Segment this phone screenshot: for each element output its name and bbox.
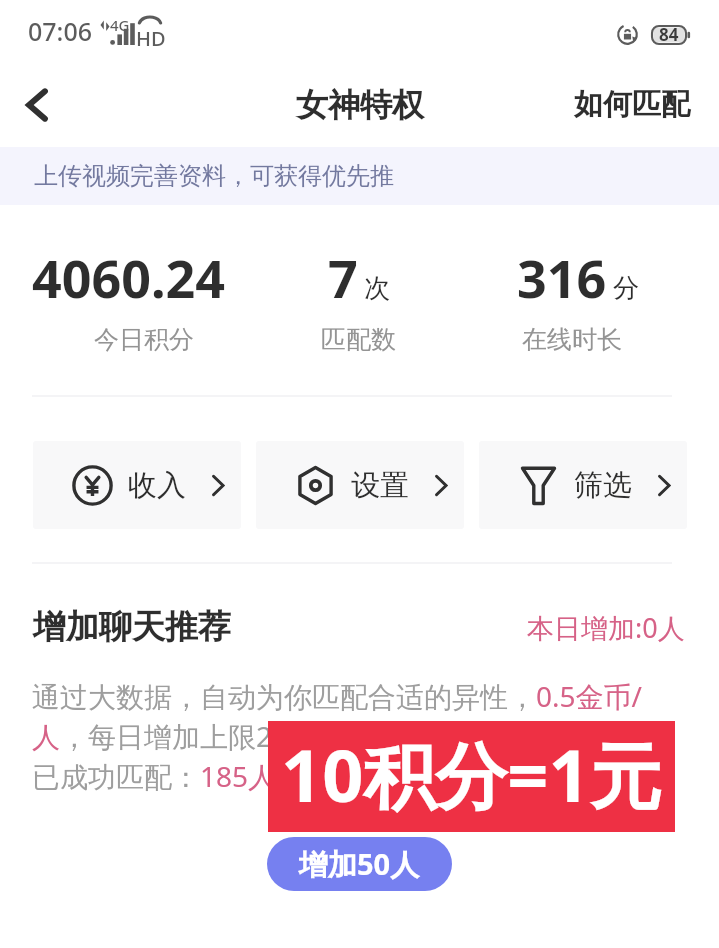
staticText: 316 xyxy=(517,242,607,313)
staticText: 7 xyxy=(328,242,358,313)
button[interactable]: 收入 xyxy=(33,441,241,529)
button[interactable]: 如何匹配 xyxy=(554,74,719,135)
staticText: 次 xyxy=(364,272,390,305)
staticText: 分 xyxy=(613,272,639,305)
staticText: 本日增加:0人 xyxy=(527,609,685,646)
staticText: 07:06 xyxy=(28,14,93,48)
staticText: 设置 xyxy=(351,467,409,504)
button[interactable]: Back xyxy=(8,76,66,134)
staticText: 匹配数 xyxy=(321,324,396,355)
staticText: 筛选 xyxy=(574,467,632,504)
button[interactable]: 增加50人 xyxy=(267,837,452,891)
staticText: 收入 xyxy=(128,467,186,504)
other: Rotation lock xyxy=(617,24,638,45)
staticText: 增加50人 xyxy=(299,844,420,884)
staticText: 女神特权 xyxy=(296,85,424,125)
staticText: 今日积分 xyxy=(94,324,194,355)
staticText: 10积分=1元 xyxy=(281,725,662,823)
staticText: 上传视频完善资料，可获得优先推 xyxy=(34,161,394,191)
button[interactable]: 设置 xyxy=(256,441,464,529)
staticText: 通过大数据，自动为你匹配合适的异性，0.5金币/ 人，每日增加上限200人 已成… xyxy=(32,676,699,796)
button[interactable]: 上传视频完善资料，可获得优先推 xyxy=(0,147,719,205)
button[interactable]: 筛选 xyxy=(479,441,687,529)
staticText: 在线时长 xyxy=(522,324,622,355)
staticText: 如何匹配 xyxy=(574,86,690,123)
staticText: HD xyxy=(136,25,166,52)
staticText: 84 xyxy=(659,23,679,46)
staticText: 增加聊天推荐 xyxy=(33,606,231,648)
staticText: 4G xyxy=(110,15,130,35)
staticText: 4060.24 xyxy=(32,242,226,313)
